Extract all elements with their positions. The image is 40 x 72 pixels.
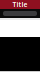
staticText: Title xyxy=(12,0,27,9)
